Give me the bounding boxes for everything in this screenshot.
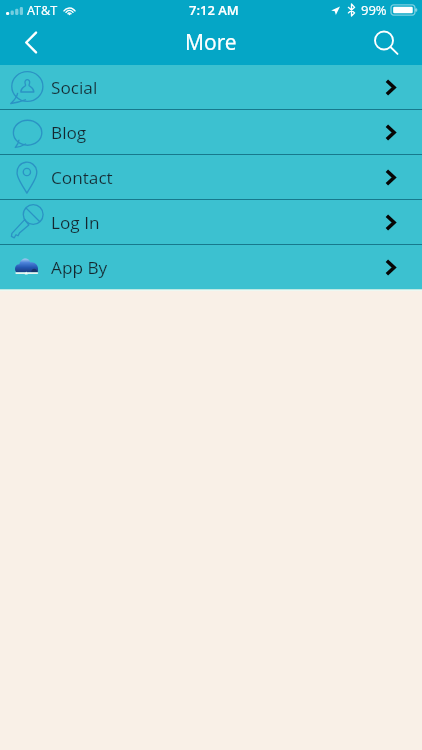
staticText: Contact: [51, 166, 113, 189]
staticText: More: [185, 28, 237, 57]
button[interactable]: Log In: [0, 200, 422, 244]
staticText: Log In: [51, 211, 100, 234]
button[interactable]: Search: [366, 20, 422, 65]
staticText: Blog: [51, 121, 87, 144]
staticText: Social: [51, 76, 98, 99]
staticText: App By: [51, 256, 108, 279]
button[interactable]: Back: [0, 20, 58, 65]
button[interactable]: Social: [0, 65, 422, 109]
staticText: 99%: [361, 1, 387, 19]
button[interactable]: Contact: [0, 155, 422, 199]
button[interactable]: Blog: [0, 110, 422, 154]
button[interactable]: App By: [0, 245, 422, 289]
staticText: 7:12 AM: [189, 1, 239, 19]
staticText: AT&T: [27, 2, 58, 19]
